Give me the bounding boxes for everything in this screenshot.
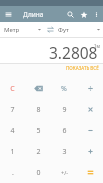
button[interactable]: Backspace [25,78,51,99]
staticText: 0 [36,168,41,178]
staticText: Метр [4,26,20,34]
staticText: 4 [10,126,15,136]
button[interactable]: 9 [51,99,77,120]
button[interactable]: 0 [25,162,51,183]
button[interactable]: +/- [51,162,77,183]
button[interactable]: Divide [77,78,103,99]
button[interactable]: 8 [25,99,51,120]
staticText: 1 [10,147,15,157]
staticText: 7 [10,105,15,115]
button[interactable]: Swap units [44,23,57,36]
button[interactable]: Метр [0,22,44,37]
staticText: 9 [62,105,67,115]
staticText: 3.2808 [49,42,98,63]
button[interactable]: Фут [57,22,103,37]
staticText: % [61,84,67,94]
button[interactable]: 1 [0,141,25,162]
staticText: C [10,84,15,94]
staticText: . [12,168,14,178]
button[interactable]: Multiply [77,99,103,120]
button[interactable]: Plus [77,141,103,162]
staticText: 6 [62,126,67,136]
staticText: 2 [36,147,41,157]
staticText: 3 [62,147,67,157]
button[interactable]: 3 [51,141,77,162]
button[interactable]: Menu [0,6,16,22]
staticText: 5 [36,126,41,136]
button[interactable]: More options [90,8,102,20]
button[interactable]: 5 [25,120,51,141]
button[interactable]: 4 [0,120,25,141]
button[interactable]: Favorite [77,8,90,21]
button[interactable]: Equals [77,162,103,183]
button[interactable]: C [0,78,25,99]
button[interactable]: ПОКАЗАТЬ ВСЁ [66,65,99,71]
button[interactable]: Search [63,7,77,21]
button[interactable]: 6 [51,120,77,141]
button[interactable]: 7 [0,99,25,120]
button[interactable]: % [51,78,77,99]
staticText: +/- [61,169,68,176]
staticText: Длина [23,10,44,19]
staticText: 8 [36,105,41,115]
button[interactable]: 2 [25,141,51,162]
staticText: Фут [58,26,69,34]
staticText: 1м [94,43,101,49]
button[interactable]: Minus [77,120,103,141]
